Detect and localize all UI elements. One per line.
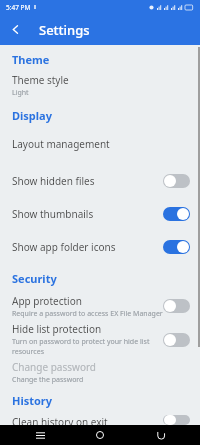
staticText: Hide list protection <box>12 322 102 336</box>
button[interactable]: Show app folder icons <box>0 230 200 263</box>
button[interactable]: Show hidden files <box>0 164 200 197</box>
staticText: Show hidden files <box>12 174 95 188</box>
staticText: Show app folder icons <box>12 240 116 254</box>
staticText: Settings <box>39 21 90 39</box>
staticText: Clean history on exit <box>12 415 108 425</box>
staticText: Show thumbnails <box>12 207 94 221</box>
staticText: Light <box>12 88 29 98</box>
staticText: resources <box>12 347 45 357</box>
staticText: App protection <box>12 294 82 308</box>
staticText: Turn on password to protect your hide li… <box>12 337 150 347</box>
button[interactable]: Theme style <box>0 70 200 100</box>
staticText: History <box>12 393 53 408</box>
button[interactable]: Back <box>140 425 180 445</box>
staticText: Change the password <box>12 375 84 385</box>
button[interactable]: Hide list protection <box>0 321 200 358</box>
button[interactable]: App protection <box>0 291 200 321</box>
button[interactable]: Clean history on exit <box>0 415 200 425</box>
staticText: Layout management <box>12 137 110 151</box>
button[interactable]: Back <box>0 14 31 45</box>
staticText: Security <box>12 271 57 286</box>
button[interactable]: Show thumbnails <box>0 197 200 230</box>
staticText: Theme <box>12 52 50 67</box>
staticText: Display <box>12 108 52 123</box>
staticText: Theme style <box>12 73 69 87</box>
staticText: Change password <box>12 360 97 374</box>
staticText: 5:47 PM <box>6 3 31 12</box>
button[interactable]: Change password <box>0 358 200 386</box>
button[interactable]: Home <box>80 425 120 445</box>
button[interactable]: Layout management <box>0 131 200 157</box>
staticText: Require a password to access EX File Man… <box>12 309 163 319</box>
button[interactable]: Recent apps <box>20 425 60 445</box>
